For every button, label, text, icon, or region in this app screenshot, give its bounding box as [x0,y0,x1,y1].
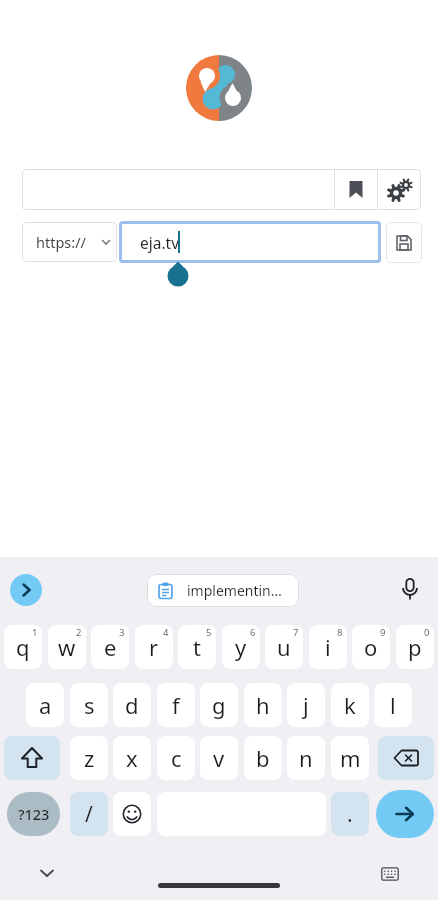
button[interactable]: c [157,736,195,780]
staticText: 2 [76,626,82,639]
button[interactable]: h [244,683,282,727]
button[interactable]: j [287,683,325,727]
staticText: eja.tv [140,232,180,253]
staticText: n [299,743,313,773]
button[interactable]: l [374,683,412,727]
button[interactable]: s [70,683,108,727]
button[interactable]: x [113,736,151,780]
button[interactable] [158,883,280,888]
staticText: e [104,632,117,662]
button[interactable] [334,169,378,210]
staticText: r [149,632,159,662]
button[interactable] [381,867,399,881]
button[interactable] [10,574,42,606]
staticText: a [39,690,52,720]
staticText: c [171,743,182,773]
button[interactable]: eja.tv [119,221,381,263]
staticText: 7 [293,626,299,639]
staticText: implementin… [187,581,282,600]
staticText: u [277,632,291,662]
staticText: p [408,632,422,662]
staticText: i [325,632,331,662]
staticText: / [85,800,93,829]
button[interactable]: b [244,736,282,780]
staticText: o [364,632,378,662]
staticText: 0 [424,626,430,639]
staticText: https:// [36,232,86,252]
staticText: h [256,690,270,720]
button[interactable]: / [70,792,108,836]
staticText: 1 [32,626,38,639]
staticText: z [84,743,95,773]
button[interactable] [22,169,335,210]
button[interactable]: y [222,625,260,669]
staticText: 9 [380,626,386,639]
staticText: 3 [119,626,125,639]
button[interactable]: m [331,736,369,780]
staticText: g [212,690,226,720]
staticText: 8 [337,626,343,639]
button[interactable]: z [70,736,108,780]
staticText: 6 [250,626,256,639]
button[interactable]: t [178,625,216,669]
staticText: ?123 [18,804,50,824]
button[interactable]: f [157,683,195,727]
staticText: 5 [206,626,212,639]
staticText: j [303,690,309,720]
button[interactable]: i [309,625,347,669]
button[interactable]: r [135,625,173,669]
button[interactable]: e [91,625,129,669]
button[interactable] [376,790,434,838]
staticText: f [172,690,180,720]
button[interactable] [378,736,434,780]
button[interactable]: a [26,683,64,727]
button[interactable] [377,169,421,210]
staticText: q [16,632,30,662]
staticText: x [126,743,138,773]
staticText: . [347,800,353,829]
staticText: b [256,743,270,773]
staticText: m [340,743,361,773]
button[interactable] [113,792,151,836]
staticText: k [344,690,356,720]
button[interactable]: . [331,792,369,836]
button[interactable] [400,578,420,603]
staticText: d [125,690,139,720]
button[interactable]: https:// [22,222,117,262]
button[interactable] [4,736,60,780]
button[interactable]: ?123 [7,792,60,836]
button[interactable]: v [200,736,238,780]
button[interactable]: d [113,683,151,727]
button[interactable]: n [287,736,325,780]
staticText: w [58,632,76,662]
button[interactable] [40,869,54,878]
staticText: t [193,632,201,662]
button[interactable]: q [4,625,42,669]
button[interactable]: implementin… [147,574,299,607]
button[interactable]: g [200,683,238,727]
staticText: 4 [163,626,169,639]
button[interactable]: o [352,625,390,669]
staticText: l [390,690,396,720]
staticText: s [84,690,95,720]
button[interactable]: u [265,625,303,669]
staticText: v [213,743,225,773]
button[interactable] [386,222,422,263]
staticText: y [235,632,247,662]
button[interactable]: k [331,683,369,727]
button[interactable]: w [48,625,86,669]
button[interactable]: p [396,625,434,669]
